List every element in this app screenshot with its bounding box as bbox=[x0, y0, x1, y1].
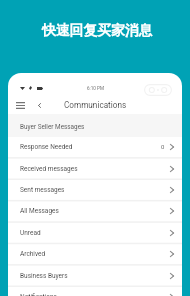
staticText: Notifications bbox=[20, 293, 57, 296]
staticText: Sent messages bbox=[20, 186, 65, 194]
staticText: Business Buyers bbox=[20, 272, 68, 280]
staticText: Archived bbox=[20, 250, 46, 258]
button[interactable]: Business Buyers bbox=[8, 266, 182, 287]
staticText: 6:10 PM bbox=[87, 86, 104, 91]
staticText: Buyer Seller Messages bbox=[20, 123, 85, 131]
staticText: All Messages bbox=[20, 207, 59, 215]
staticText: Unread bbox=[20, 229, 41, 237]
button[interactable]: Archived bbox=[8, 244, 182, 265]
button[interactable]: Response Needed bbox=[8, 137, 182, 158]
button[interactable]: Back bbox=[30, 95, 49, 115]
staticText: 0 bbox=[161, 143, 165, 150]
staticText: 快速回复买家消息 bbox=[42, 22, 153, 39]
button[interactable]: Unread bbox=[8, 223, 182, 244]
button[interactable]: Sent messages bbox=[8, 180, 182, 201]
staticText: Received messages bbox=[20, 165, 78, 173]
button[interactable]: Open navigation menu bbox=[10, 95, 30, 115]
button[interactable]: All Messages bbox=[8, 201, 182, 222]
staticText: Response Needed bbox=[20, 143, 73, 151]
button[interactable]: Received messages bbox=[8, 159, 182, 180]
button[interactable]: Notifications bbox=[8, 287, 182, 296]
staticText: Communications bbox=[64, 100, 127, 110]
